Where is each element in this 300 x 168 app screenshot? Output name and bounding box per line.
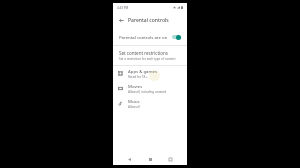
staticText: Movies — [128, 83, 143, 89]
button[interactable]: Movies — [113, 81, 187, 96]
staticText: Allow all, including unrated — [128, 90, 167, 94]
staticText: 4:43 PM — [117, 6, 129, 10]
staticText: Parental controls — [128, 17, 169, 24]
staticText: Parental controls are on — [119, 34, 171, 40]
staticText: Music — [128, 98, 140, 104]
button[interactable]: Parental controls are on — [113, 28, 187, 45]
button[interactable]: Music — [113, 96, 187, 111]
button[interactable]: Recents — [166, 155, 175, 164]
staticText: Apps & games — [128, 68, 158, 74]
staticText: Rated for 18+ — [128, 75, 147, 79]
staticText: Allow all — [128, 105, 140, 109]
staticText: Set a restriction for each type of conte… — [119, 57, 176, 61]
button[interactable]: Home — [146, 155, 155, 164]
button[interactable]: Back — [125, 155, 134, 164]
button[interactable]: Back — [116, 15, 126, 25]
staticText: Set content restrictions — [119, 50, 168, 56]
button[interactable]: Apps & games — [113, 66, 187, 81]
